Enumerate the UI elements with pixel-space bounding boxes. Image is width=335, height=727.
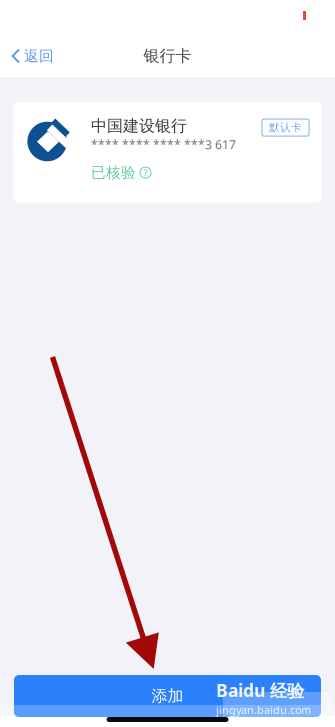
staticText: 已核验 (91, 164, 136, 182)
staticText: Baidu 经验 (216, 679, 304, 702)
button[interactable]: 返回 (0, 40, 65, 72)
button[interactable]: 添加 (14, 675, 321, 717)
staticText: 添加 (151, 686, 183, 706)
staticText: 默认卡 (269, 121, 302, 134)
staticText: 银行卡 (143, 46, 191, 66)
button[interactable]: 默认卡 (262, 119, 309, 136)
staticText: ? (143, 166, 147, 179)
staticText: jingyan.baidu.com (216, 703, 311, 717)
staticText: **** **** **** ***3 617 (91, 137, 236, 153)
staticText: 中国建设银行 (91, 116, 187, 136)
staticText: 返回 (24, 47, 54, 65)
